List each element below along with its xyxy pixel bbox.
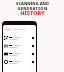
button[interactable]: More options — [3, 50, 36, 58]
button[interactable] — [5, 28, 11, 31]
staticText: SCANNING AND — [16, 1, 49, 6]
staticText: HISTORY — [20, 9, 45, 16]
button[interactable]: More options — [3, 34, 36, 42]
staticText: GENERATION — [17, 6, 48, 11]
button[interactable]: More options — [3, 42, 36, 50]
button[interactable]: More options — [3, 58, 36, 66]
